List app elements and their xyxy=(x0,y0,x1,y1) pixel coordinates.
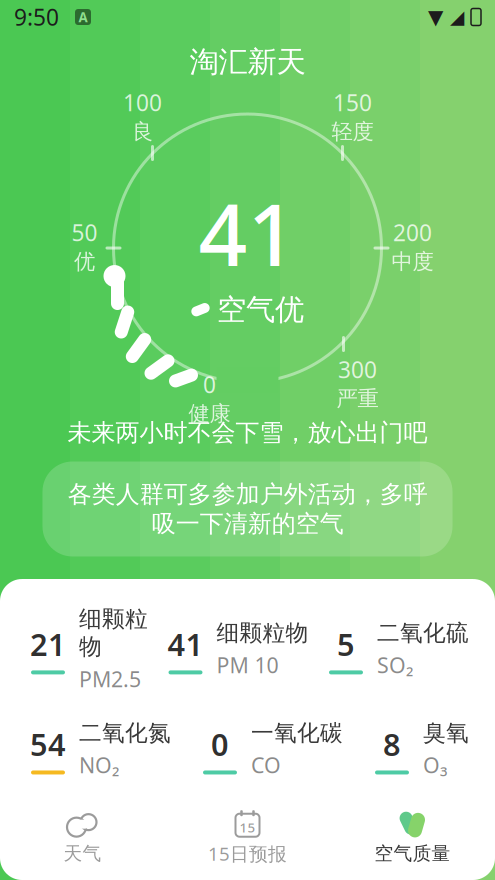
staticText: 8 xyxy=(383,724,401,764)
staticText: O₃ xyxy=(423,751,447,779)
staticText: 41 xyxy=(198,176,296,290)
staticText: 二氧化氮 xyxy=(79,719,171,747)
staticText: A xyxy=(78,8,87,26)
staticText: 200 xyxy=(393,217,432,247)
staticText: 0 xyxy=(203,369,216,399)
staticText: NO₂ xyxy=(79,751,119,779)
staticText: 100 xyxy=(123,87,162,117)
staticText: 优 xyxy=(74,248,95,275)
staticText: 中度 xyxy=(391,248,433,275)
staticText: 0 xyxy=(211,724,229,764)
staticText: 细颗粒物 xyxy=(216,619,308,647)
staticText: 一氧化碳 xyxy=(251,719,343,747)
staticText: PM2.5 xyxy=(79,665,141,693)
button[interactable]: 天气 xyxy=(0,802,165,873)
staticText: 5 xyxy=(337,624,355,664)
staticText: 150 xyxy=(333,87,372,117)
staticText: 15日预报 xyxy=(208,841,287,866)
staticText: 54 xyxy=(30,724,66,764)
staticText: CO xyxy=(251,751,281,779)
staticText: 空气质量 xyxy=(374,842,450,865)
staticText: 严重 xyxy=(336,385,378,412)
staticText: 9:50 xyxy=(14,2,59,32)
staticText: 二氧化硫 xyxy=(377,619,469,647)
staticText: ◢ xyxy=(450,6,464,28)
staticText: 41 xyxy=(167,624,203,664)
staticText: 良 xyxy=(132,118,153,145)
staticText: 未来两小时不会下雪，放心出门吧 xyxy=(67,418,427,447)
staticText: 细颗粒物 xyxy=(79,605,148,661)
staticText: PM 10 xyxy=(216,651,278,679)
staticText: 300 xyxy=(338,354,377,384)
staticText: 50 xyxy=(71,217,97,247)
staticText: 淘汇新天 xyxy=(189,44,305,80)
button[interactable]: 空气质量 xyxy=(330,802,495,873)
staticText: 天气 xyxy=(63,842,101,865)
staticText: 健康 xyxy=(188,400,230,427)
staticText: 各类人群可多参加户外活动，多呼吸一下清新的空气 xyxy=(67,479,427,538)
staticText: ▼ xyxy=(428,6,443,28)
staticText: 15 xyxy=(239,818,255,836)
button[interactable]: 15 xyxy=(165,801,330,874)
staticText: 臭氧 xyxy=(423,719,469,747)
staticText: SO₂ xyxy=(377,651,413,679)
staticText: 轻度 xyxy=(331,118,373,145)
staticText: 21 xyxy=(30,624,66,664)
staticText: 空气优 xyxy=(217,292,304,328)
